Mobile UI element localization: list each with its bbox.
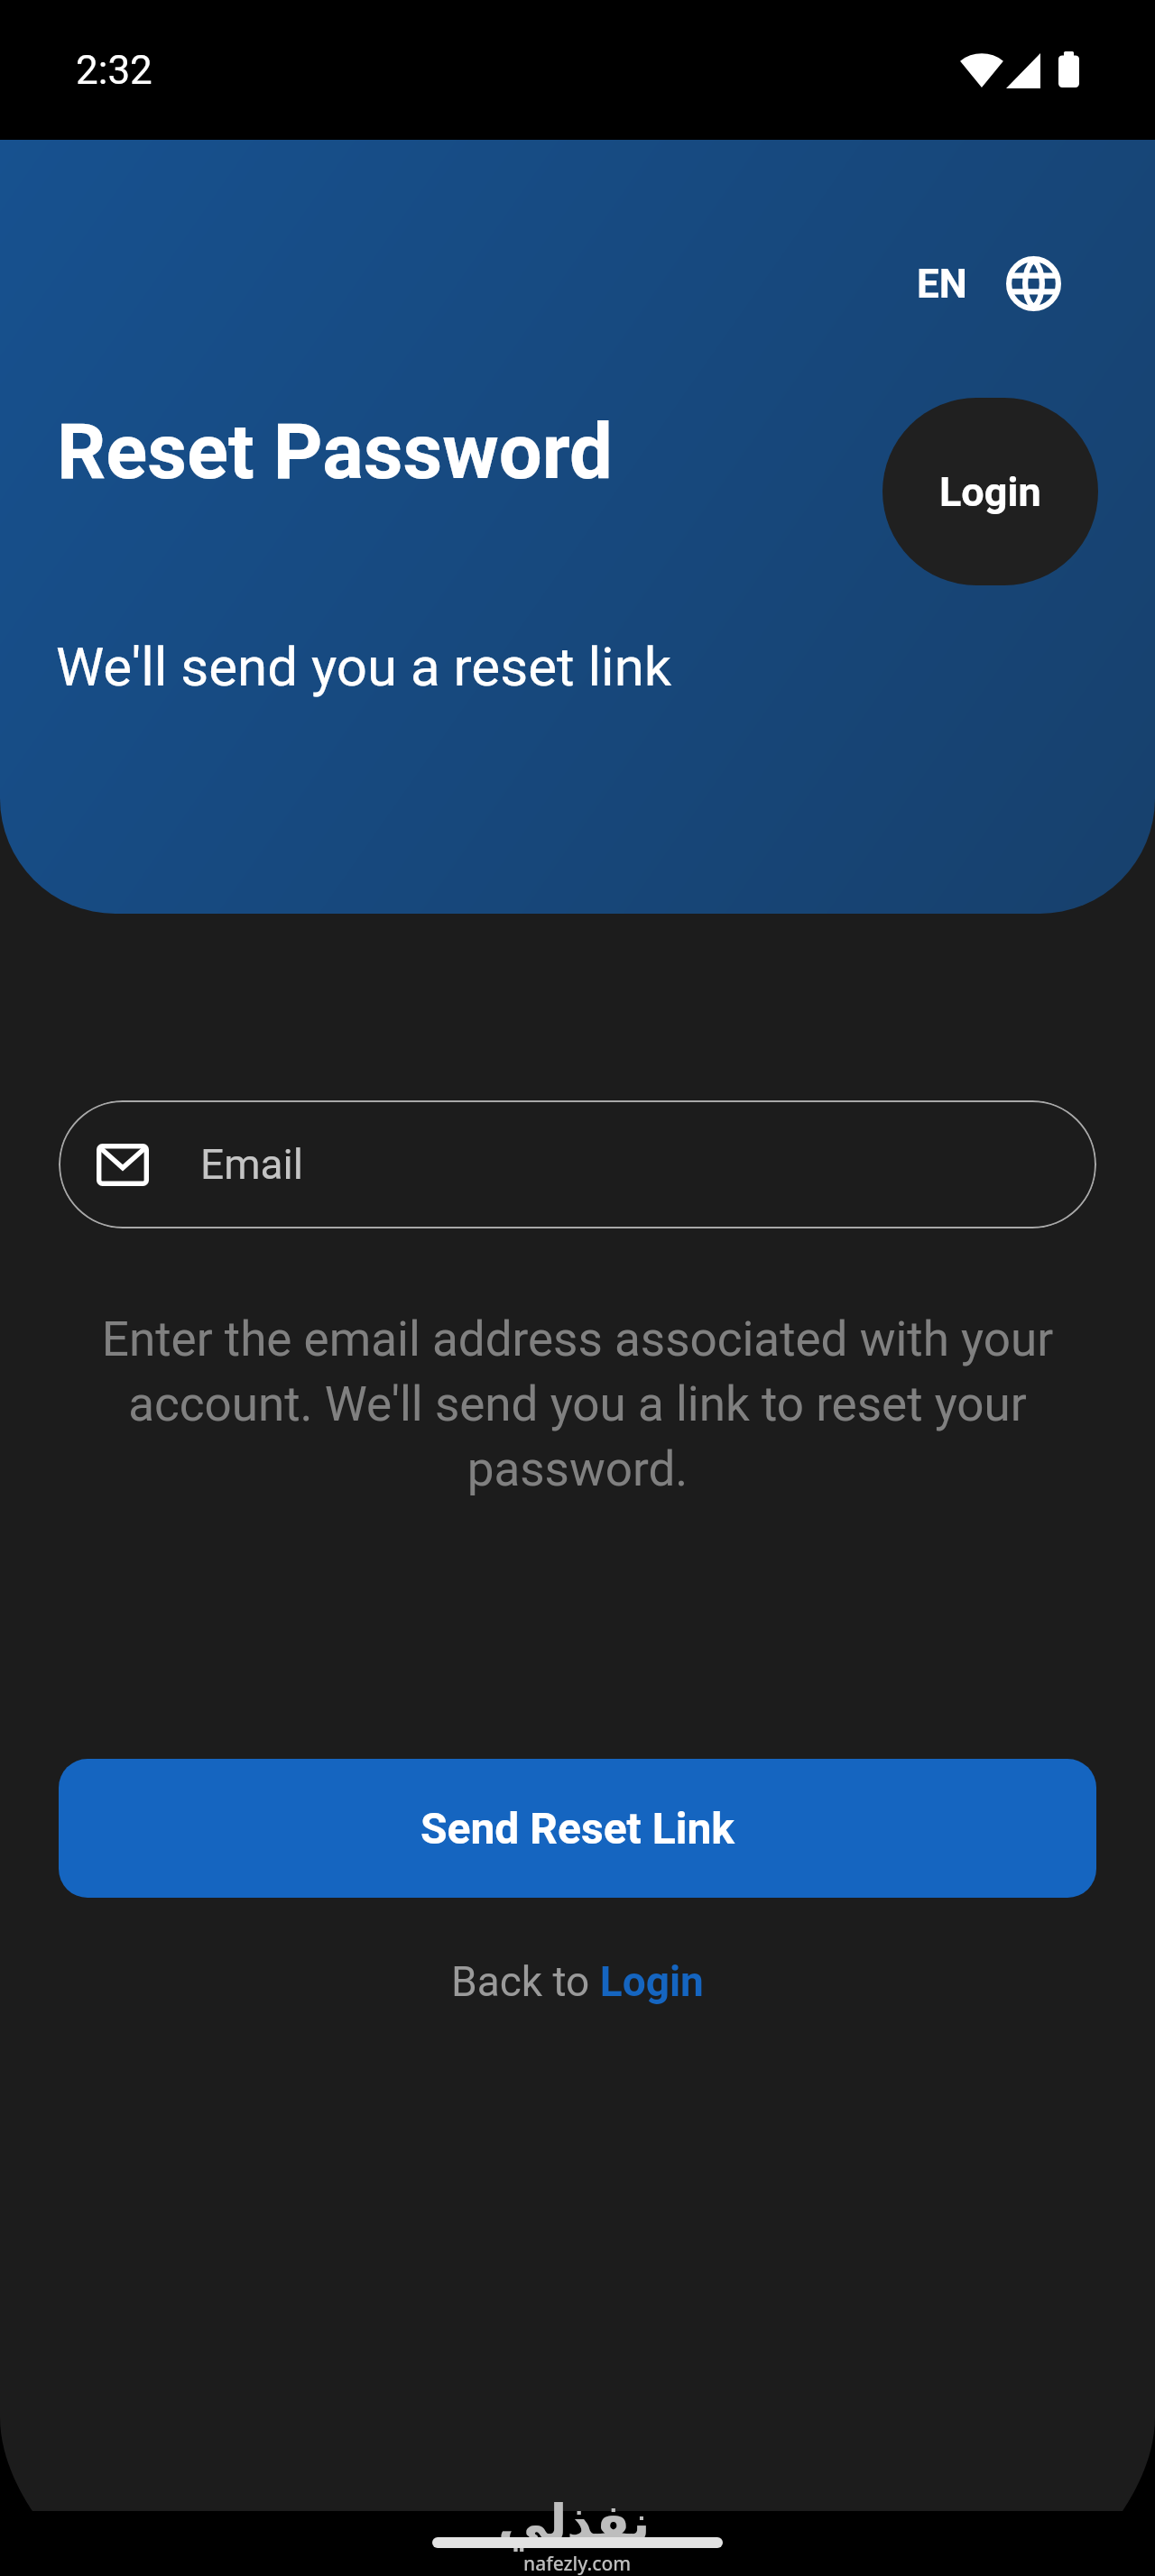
staticText: We'll send you a reset link — [56, 635, 672, 698]
button[interactable]: Send Reset Link — [59, 1759, 1096, 1898]
staticText: nafezly.com — [523, 2551, 632, 2576]
button[interactable]: Login — [882, 398, 1098, 585]
staticText: Reset Password — [57, 407, 613, 497]
button[interactable]: Email — [59, 1100, 1096, 1228]
staticText: Login — [939, 468, 1041, 516]
staticText: Back to Login — [451, 1957, 704, 2006]
other: Change language — [1006, 256, 1061, 311]
button[interactable]: Back to Login — [426, 1945, 729, 2019]
staticText: Email — [200, 1140, 303, 1189]
staticText: Enter the email address associated with … — [90, 1311, 1065, 1497]
staticText: نفذلي — [498, 2494, 651, 2552]
staticText: 2:32 — [76, 47, 152, 94]
button[interactable]: EN — [899, 240, 1079, 327]
staticText: EN — [917, 261, 967, 308]
staticText: Send Reset Link — [420, 1803, 735, 1854]
